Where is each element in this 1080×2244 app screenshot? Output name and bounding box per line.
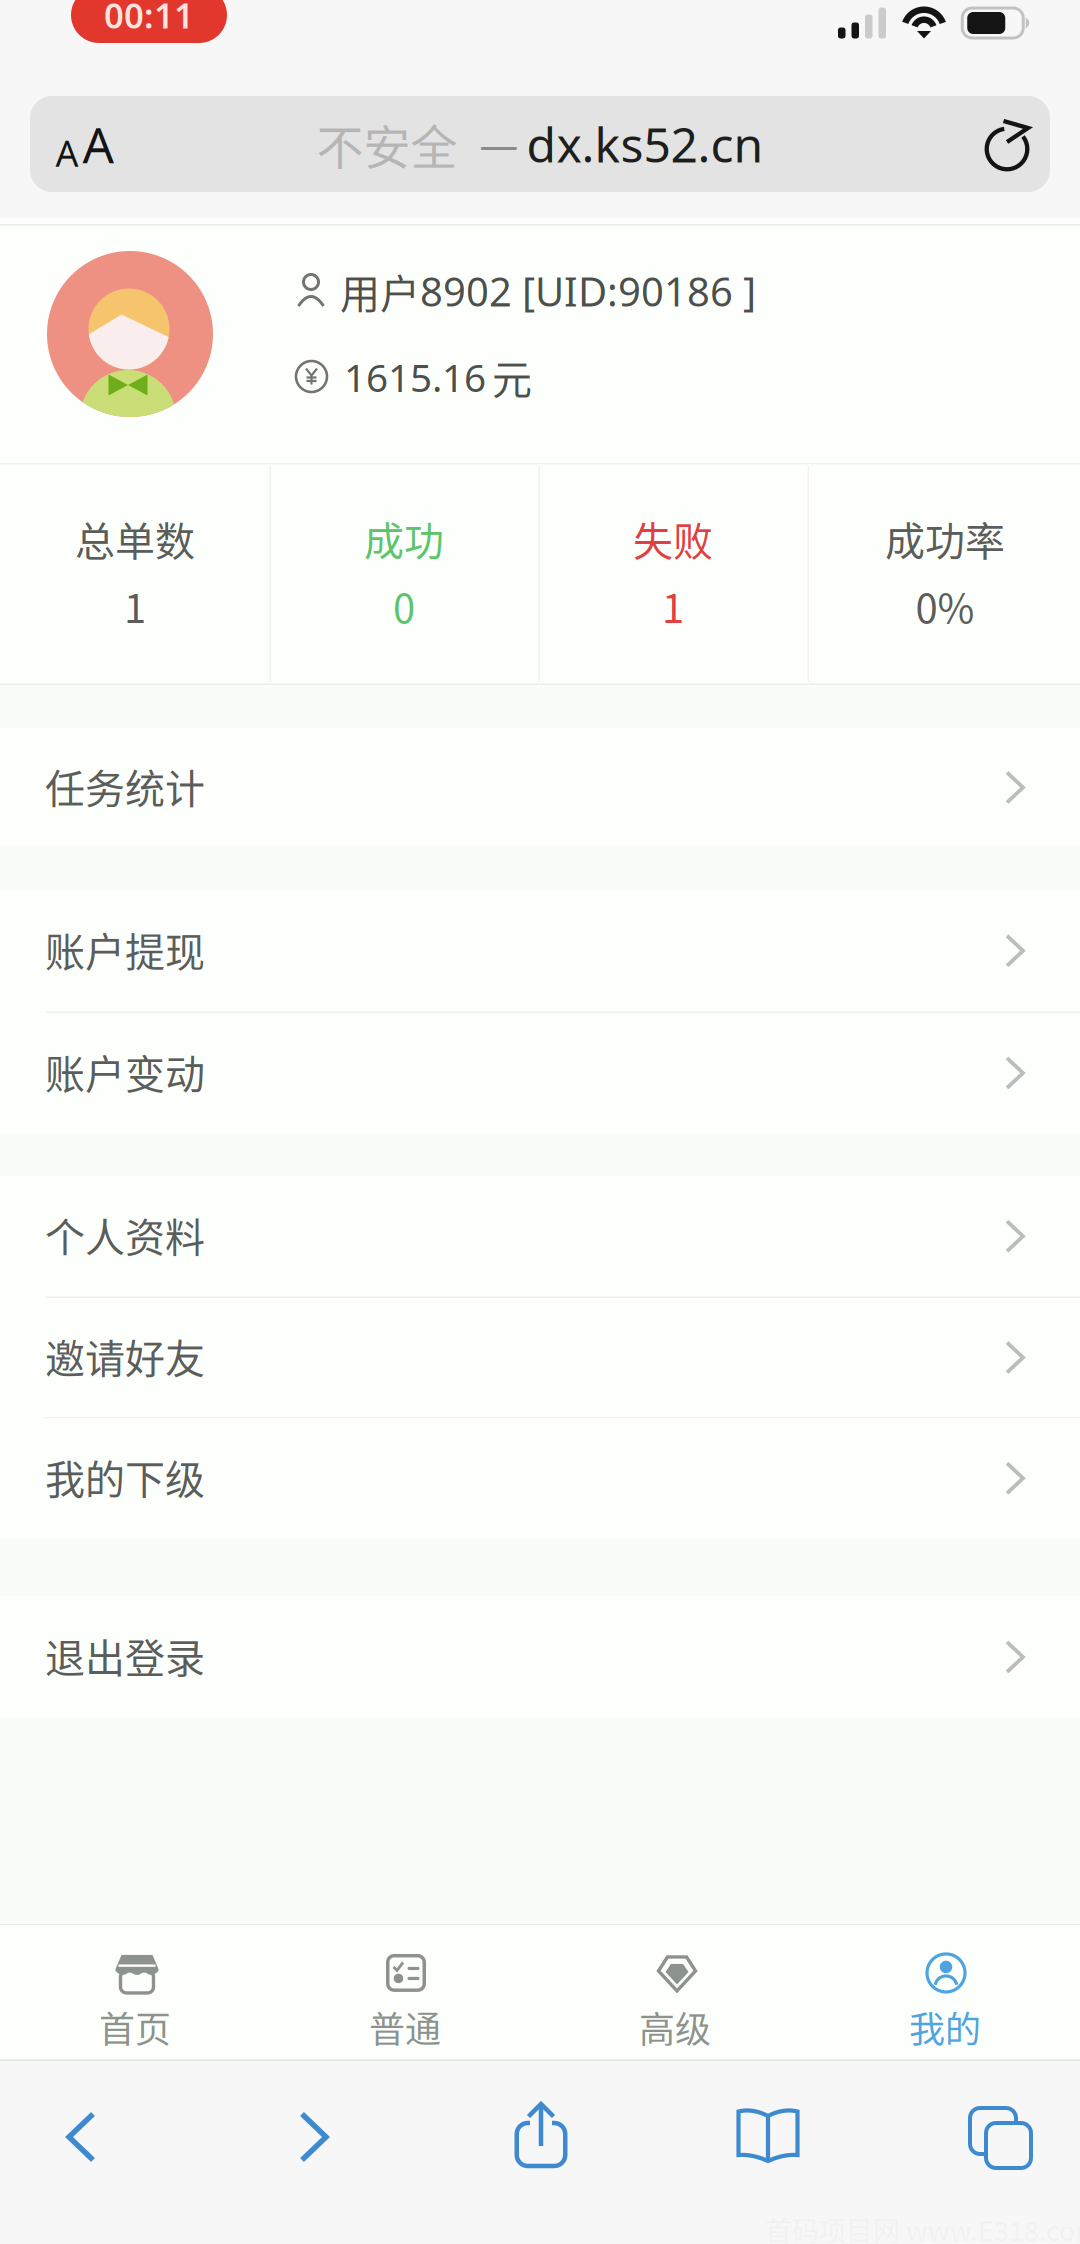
button[interactable]: 账户变动 — [0, 218, 1080, 338]
button[interactable]: Back — [16, 2087, 146, 2187]
button[interactable]: Reload page — [971, 98, 1045, 194]
button[interactable]: 账户提现 — [0, 218, 1080, 339]
staticText: 用户 — [340, 262, 420, 320]
staticText: 我的 — [909, 2001, 981, 2053]
staticText: 元 — [492, 348, 532, 406]
button[interactable]: Bookmarks — [703, 2086, 833, 2186]
staticText: — — [479, 118, 518, 170]
button[interactable]: 邀请好友 — [0, 218, 1080, 337]
staticText: 账户提现 — [45, 920, 205, 978]
staticText: 我的下级 — [45, 1448, 205, 1506]
staticText: 1 — [124, 576, 146, 634]
button[interactable]: Forward — [249, 2087, 379, 2187]
staticText: 0% — [915, 576, 974, 634]
staticText: 高级 — [639, 2001, 711, 2053]
button[interactable]: Tabs — [928, 2081, 1058, 2181]
button[interactable]: 首页 — [0, 1925, 270, 2059]
staticText: A — [55, 129, 78, 177]
staticText: 总单数 — [75, 509, 195, 567]
button[interactable]: 普通 — [270, 1925, 540, 2059]
button[interactable]: Share — [476, 2085, 606, 2185]
staticText: 成功 — [364, 509, 444, 567]
button[interactable]: 个人资料 — [0, 218, 1080, 338]
staticText: 任务统计 — [45, 757, 205, 815]
button[interactable]: 我的下级 — [0, 218, 1080, 337]
staticText: 成功率 — [885, 509, 1005, 567]
button[interactable]: Page settings — [30, 96, 140, 192]
staticText: dx.ks52.cn — [526, 112, 763, 176]
staticText: 账户变动 — [45, 1042, 205, 1100]
staticText: 0 — [393, 576, 415, 634]
button[interactable]: 任务统计 — [0, 218, 1080, 337]
button[interactable]: 退出登录 — [0, 218, 1080, 340]
staticText: 1615.16 — [344, 351, 486, 403]
staticText: 邀请好友 — [45, 1327, 205, 1385]
staticText: 退出登录 — [45, 1626, 205, 1684]
button[interactable]: 我的 — [810, 1925, 1080, 2059]
staticText: 8902 [UID:90186 ] — [420, 264, 756, 317]
staticText: 00:11 — [104, 0, 194, 38]
staticText: 普通 — [369, 2001, 441, 2053]
staticText: 1 — [662, 576, 684, 634]
staticText: A — [82, 111, 114, 177]
staticText: 失败 — [633, 509, 713, 567]
staticText: 个人资料 — [45, 1206, 205, 1264]
staticText: 不安全 — [316, 110, 457, 178]
button[interactable]: 高级 — [540, 1925, 810, 2059]
button[interactable]: 不安全 — [160, 96, 920, 192]
staticText: 首页 — [99, 2001, 171, 2053]
